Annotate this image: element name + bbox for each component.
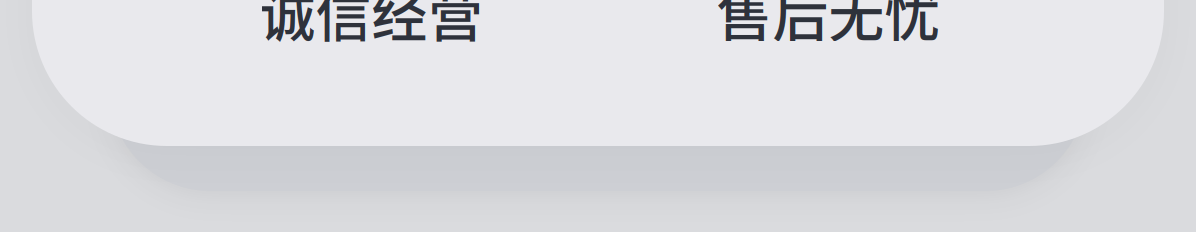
staticText: 诚信经营	[259, 0, 483, 52]
staticText: 售后无忧	[716, 0, 940, 52]
